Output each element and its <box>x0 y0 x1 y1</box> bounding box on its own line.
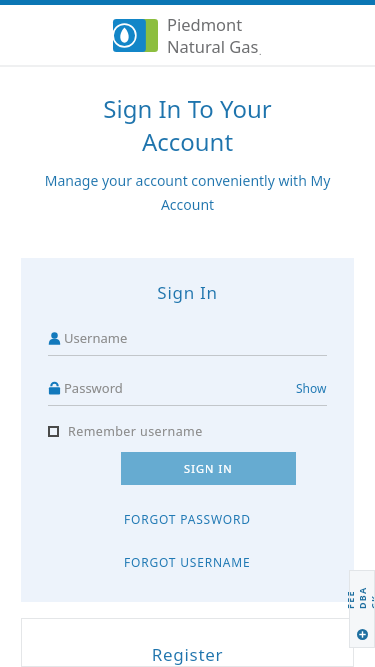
button[interactable]: Show <box>296 380 327 396</box>
button[interactable]: Feedback <box>349 570 375 648</box>
staticText: Manage your account conveniently with My… <box>28 171 347 214</box>
button[interactable]: Password <box>48 379 296 397</box>
staticText: FEEDBACK <box>344 583 375 609</box>
staticText: Show <box>296 380 327 396</box>
staticText: FORGOT PASSWORD <box>124 511 251 527</box>
staticText: Piedmont <box>167 13 243 35</box>
button[interactable]: Remember username <box>48 423 203 440</box>
staticText: Natural Gas <box>167 35 259 57</box>
button[interactable]: FORGOT PASSWORD <box>48 511 327 527</box>
staticText: Username <box>64 329 128 347</box>
button[interactable]: SIGN IN <box>121 452 296 485</box>
staticText: Password <box>64 379 123 397</box>
button[interactable]: FORGOT USERNAME <box>48 554 327 570</box>
staticText: SIGN IN <box>184 461 233 476</box>
staticText: Sign In <box>48 281 327 304</box>
staticText: FORGOT USERNAME <box>124 554 251 570</box>
button[interactable]: Username <box>48 329 327 356</box>
staticText: Sign In To Your Account <box>24 92 351 158</box>
staticText: . <box>259 45 262 57</box>
staticText: Remember username <box>68 423 203 440</box>
staticText: Register <box>21 643 354 666</box>
